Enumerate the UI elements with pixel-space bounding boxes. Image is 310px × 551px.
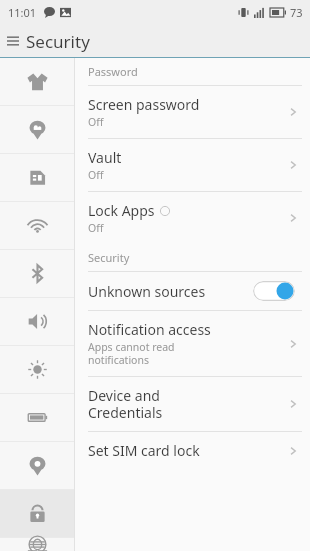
button[interactable]: Wi-Fi: [0, 202, 74, 249]
button[interactable]: Battery: [0, 394, 74, 441]
staticText: Security: [88, 250, 130, 265]
button[interactable]: Location: [0, 442, 74, 489]
button[interactable]: SIM cards: [0, 154, 74, 201]
button[interactable]: Notification access: [75, 311, 310, 376]
button[interactable]: Set SIM card lock: [75, 432, 310, 469]
button[interactable]: Unknown sources: [75, 272, 310, 310]
button[interactable]: Security: [0, 490, 74, 537]
staticText: Notification access: [88, 320, 211, 339]
button[interactable]: Open navigation menu: [0, 28, 26, 54]
button[interactable]: Device and Credentials: [75, 377, 310, 431]
staticText: Password: [88, 64, 138, 79]
staticText: Screen password: [88, 95, 200, 114]
staticText: Unknown sources: [88, 282, 253, 301]
staticText: Off: [88, 168, 104, 182]
staticText: Set SIM card lock: [88, 441, 200, 460]
staticText: Vault: [88, 148, 122, 167]
staticText: Off: [88, 221, 104, 235]
button[interactable]: Screen password: [75, 86, 310, 138]
button[interactable]: Cloud: [0, 106, 74, 153]
staticText: Apps cannot read notifications: [88, 340, 175, 367]
button[interactable]: Themes: [0, 58, 74, 105]
staticText: Device and Credentials: [88, 386, 163, 422]
staticText: Security: [26, 30, 90, 53]
button[interactable]: Lock Apps: [75, 192, 310, 244]
staticText: Lock Apps: [88, 201, 155, 220]
button[interactable]: Display: [0, 346, 74, 393]
button[interactable]: Bluetooth: [0, 250, 74, 297]
staticText: 73: [290, 5, 303, 20]
button[interactable]: Sound: [0, 298, 74, 345]
button[interactable]: Language: [0, 538, 74, 551]
button[interactable]: Vault: [75, 139, 310, 191]
staticText: 11:01: [8, 5, 37, 20]
staticText: Off: [88, 115, 104, 129]
